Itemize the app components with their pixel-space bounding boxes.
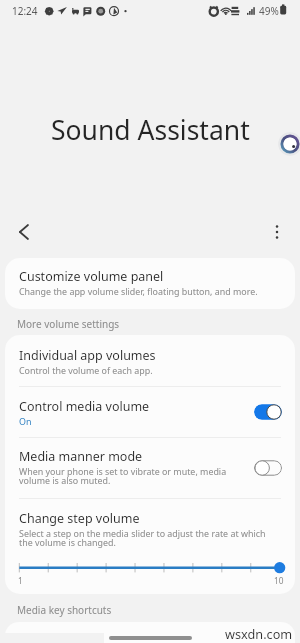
button[interactable]: Customize volume panel xyxy=(5,258,295,309)
staticText: 10 xyxy=(274,575,284,586)
button[interactable]: Navigate up xyxy=(3,212,43,252)
staticText: Control the volume of each app. xyxy=(19,364,153,376)
button[interactable]: Volume step slider xyxy=(5,557,295,579)
staticText: Select a step on the media slider to adj… xyxy=(19,527,275,549)
staticText: Change the app volume slider, floating b… xyxy=(19,285,258,297)
button[interactable]: More options xyxy=(257,212,297,252)
staticText: Customize volume panel xyxy=(19,268,164,285)
button[interactable]: Toggle on xyxy=(254,404,282,420)
staticText: 49% xyxy=(259,4,279,18)
staticText: When your phone is set to vibrate or mut… xyxy=(19,465,241,487)
button[interactable]: Media manner mode xyxy=(5,438,295,498)
staticText: On xyxy=(19,415,32,427)
staticText: Control media volume xyxy=(19,398,150,415)
button[interactable]: Toggle off xyxy=(254,460,282,476)
button[interactable]: Floating volume button xyxy=(278,132,300,156)
staticText: 1 xyxy=(18,575,23,586)
staticText: Individual app volumes xyxy=(19,347,156,364)
button[interactable]: Individual app volumes xyxy=(5,335,295,386)
staticText: wsxdn.com xyxy=(225,625,293,642)
button[interactable]: Control media volume xyxy=(5,387,295,437)
staticText: Sound Assistant xyxy=(51,112,250,148)
staticText: 12:24 xyxy=(12,4,38,18)
staticText: Media key shortcuts xyxy=(17,603,112,617)
staticText: Change step volume xyxy=(19,510,140,527)
staticText: More volume settings xyxy=(17,317,120,331)
staticText: Media manner mode xyxy=(19,448,143,465)
